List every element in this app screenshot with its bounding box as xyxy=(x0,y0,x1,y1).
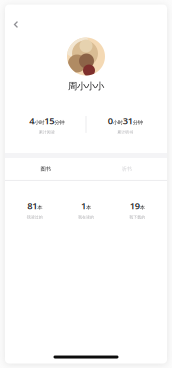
staticText: 1 xyxy=(81,199,86,212)
staticText: 听书 xyxy=(121,166,131,172)
staticText: 31 xyxy=(123,114,133,127)
staticText: 4 xyxy=(29,114,34,127)
staticText: 图书 xyxy=(40,166,50,172)
staticText: 15 xyxy=(44,114,54,127)
staticText: 周小小小 xyxy=(68,80,104,92)
staticText: 0 xyxy=(108,114,113,127)
staticText: 小时 xyxy=(34,119,44,126)
staticText: 小时 xyxy=(113,119,123,126)
staticText: 累计听书 xyxy=(117,130,133,135)
staticText: 本 xyxy=(86,204,91,211)
staticText: 81 xyxy=(27,199,37,212)
button[interactable]: Back xyxy=(7,15,25,33)
staticText: 分钟 xyxy=(54,119,64,126)
staticText: 本 xyxy=(140,204,145,211)
staticText: 累计阅读 xyxy=(39,130,55,135)
staticText: 我读过的 xyxy=(27,215,43,220)
staticText: 我下载的 xyxy=(129,215,145,220)
staticText: 本 xyxy=(37,204,42,211)
staticText: 分钟 xyxy=(133,119,143,126)
button[interactable]: 图书 xyxy=(5,158,86,180)
staticText: 我在读的 xyxy=(78,215,94,220)
staticText: 19 xyxy=(130,199,140,212)
